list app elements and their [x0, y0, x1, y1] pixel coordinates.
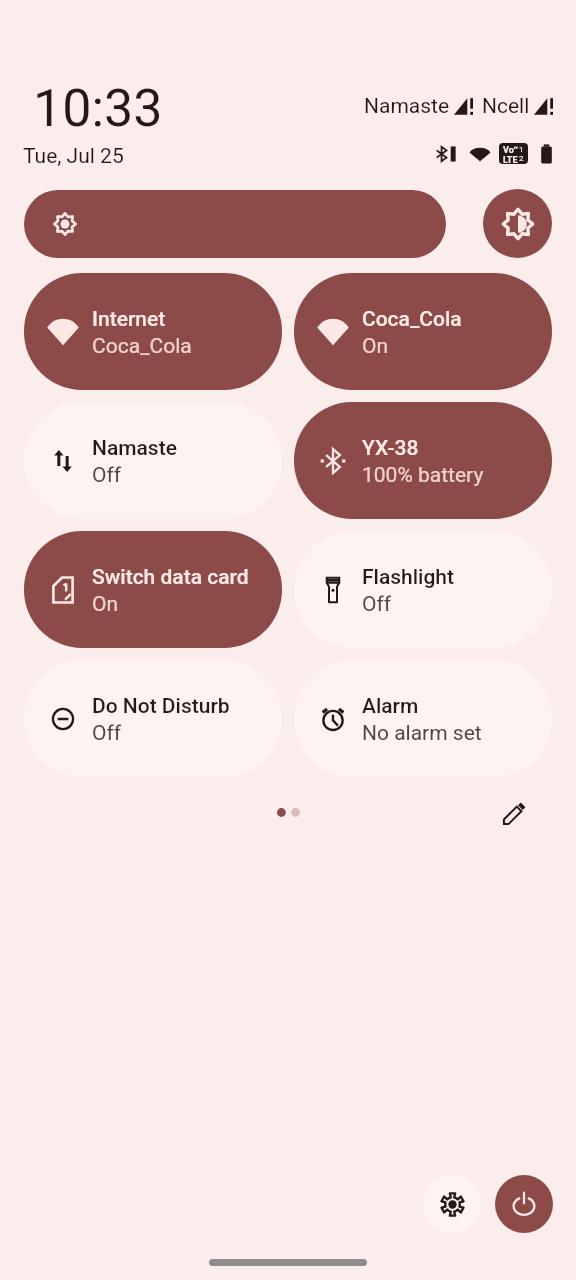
button[interactable]: Brightness [24, 190, 446, 258]
staticText: Do Not Disturb [92, 694, 230, 719]
staticText: No alarm set [362, 721, 482, 746]
staticText: Coca_Cola [92, 334, 192, 359]
staticText: Tue, Jul 25 [23, 144, 124, 169]
staticText: YX-38 [362, 436, 419, 461]
staticText: Namaste [364, 94, 450, 119]
staticText: LTE [503, 155, 518, 164]
staticText: 10:33 [33, 78, 163, 139]
button[interactable]: Switch data card [24, 531, 282, 648]
button[interactable]: Auto brightness [483, 189, 552, 258]
button[interactable]: Coca_Cola [294, 273, 552, 390]
staticText: Coca_Cola [362, 307, 462, 332]
staticText: Off [362, 592, 392, 617]
button[interactable]: Do Not Disturb [24, 660, 282, 777]
staticText: Flashlight [362, 565, 454, 590]
staticText: 100% battery [362, 463, 484, 488]
button[interactable]: Power [495, 1175, 553, 1233]
button[interactable]: YX-38 [294, 402, 552, 519]
staticText: 2 [519, 154, 524, 163]
staticText: Alarm [362, 694, 419, 719]
staticText: Namaste [92, 436, 177, 461]
button[interactable]: Flashlight [294, 531, 552, 648]
staticText: On [362, 334, 389, 359]
staticText: Switch data card [92, 565, 249, 590]
staticText: Ncell [482, 94, 530, 119]
staticText: On [92, 592, 119, 617]
button[interactable]: Edit tiles [499, 798, 529, 828]
button[interactable]: Alarm [294, 660, 552, 777]
staticText: 1 [519, 145, 524, 154]
button[interactable]: Namaste [24, 402, 282, 519]
staticText: Internet [92, 307, 166, 332]
staticText: Voʺ [503, 143, 518, 155]
staticText: Off [92, 721, 122, 746]
button[interactable]: Settings [423, 1175, 481, 1233]
staticText: Off [92, 463, 122, 488]
button[interactable]: Internet [24, 273, 282, 390]
